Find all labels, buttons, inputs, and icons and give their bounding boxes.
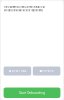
staticText: we can personalise your experience. xyxy=(4,9,44,12)
button[interactable]: Start Onboarding xyxy=(4,87,60,98)
button[interactable]: Preview xyxy=(33,66,60,75)
button[interactable]: Reset Data xyxy=(4,66,31,75)
staticText: Reset Data xyxy=(12,69,26,73)
staticText: Preview xyxy=(42,69,53,73)
staticText: This screen collects a few details so xyxy=(4,6,46,9)
staticText: Start Onboarding xyxy=(19,91,45,95)
